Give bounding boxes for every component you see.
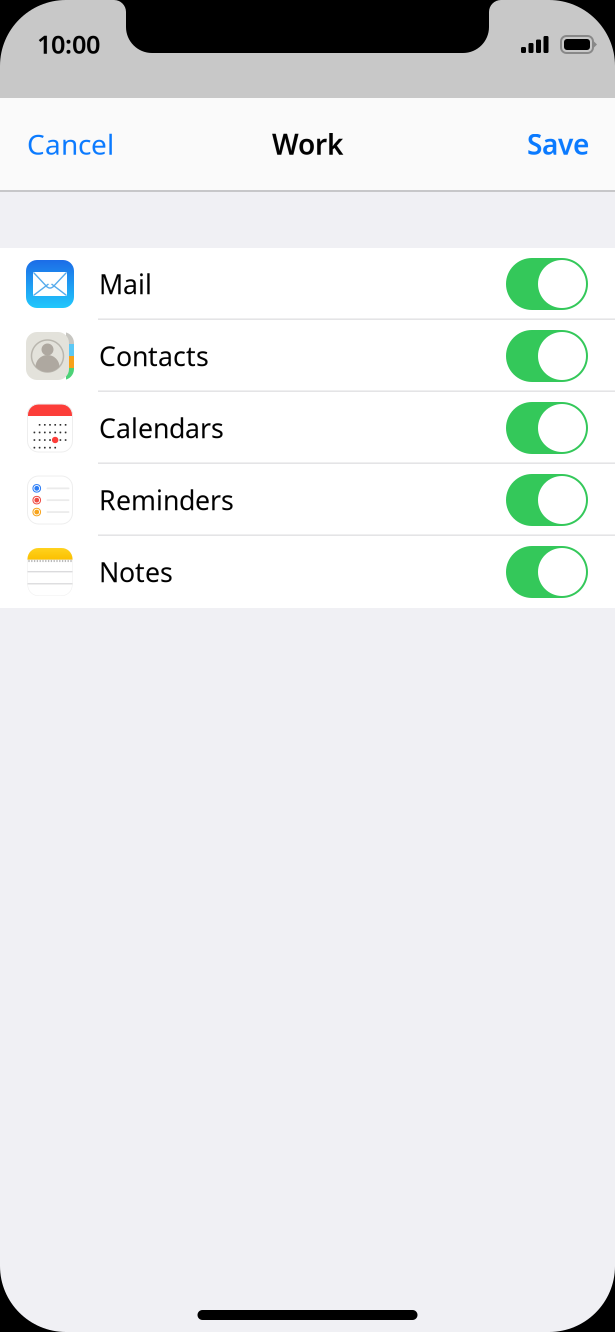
staticText: Save xyxy=(527,125,589,163)
staticText: Notes xyxy=(99,554,173,590)
button[interactable]: Save xyxy=(0,98,140,190)
staticText: Work xyxy=(272,125,343,163)
staticText: 10:00 xyxy=(37,27,100,61)
staticText: Calendars xyxy=(99,410,224,446)
button[interactable]: Contacts xyxy=(0,320,615,392)
button[interactable]: Mail xyxy=(0,248,615,320)
button[interactable]: Cancel xyxy=(0,98,140,190)
button[interactable]: Reminders xyxy=(0,464,615,536)
staticText: Cancel xyxy=(27,125,114,163)
staticText: Reminders xyxy=(99,482,234,518)
staticText: Mail xyxy=(99,266,152,302)
button[interactable]: Notes xyxy=(0,536,615,608)
staticText: Contacts xyxy=(99,338,209,374)
button[interactable]: Calendars xyxy=(0,392,615,464)
